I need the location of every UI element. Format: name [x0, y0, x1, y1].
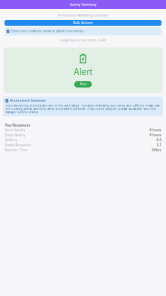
- staticText: Survey Summary: [69, 3, 96, 6]
- staticText: Your Responses: [4, 123, 30, 127]
- staticText: Assessment Summary: [10, 99, 46, 102]
- staticText: 8 hours: [149, 128, 161, 132]
- button[interactable]: Bulk Actions: [4, 20, 161, 26]
- staticText: 341ms: [151, 148, 161, 152]
- staticText: Your wellbeing scores place you in the a…: [5, 104, 160, 114]
- staticText: Alert: [73, 67, 92, 77]
- staticText: Startle Response: [4, 143, 31, 147]
- staticText: Bulk Actions: [73, 21, 93, 25]
- staticText: Review your wellbeing summary: [57, 14, 108, 17]
- staticText: Enter your company name to submit your s…: [11, 30, 84, 33]
- staticText: Hours Awake: [4, 128, 25, 132]
- staticText: 6 hours: [149, 133, 161, 137]
- staticText: Alert: [79, 83, 86, 86]
- staticText: 3.7: [156, 143, 161, 147]
- staticText: 8.5: [156, 138, 161, 142]
- staticText: Reaction Time: [4, 148, 27, 152]
- staticText: Caffeine: [4, 138, 17, 142]
- staticText: Completed 12 Feb 2024, 14:40: [60, 39, 106, 42]
- staticText: Sleep Quality: [4, 133, 25, 137]
